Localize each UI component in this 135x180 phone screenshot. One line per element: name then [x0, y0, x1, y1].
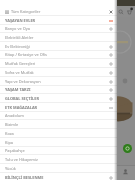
button[interactable]: YAŞAYAN EVLER [0, 16, 117, 25]
button[interactable]: Banyo ve Oya [0, 24, 117, 33]
staticText: Ev Elektroniği [5, 44, 30, 49]
button[interactable]: Tüm Kategoriler [0, 7, 117, 16]
staticText: Yapı ve Dekorasyon [5, 79, 41, 84]
button[interactable]: Sofra ve Mutfak [0, 68, 117, 77]
button[interactable]: Search [116, 7, 125, 16]
staticText: ETK MAĞAZALAR [5, 105, 38, 110]
staticText: Koza [5, 131, 14, 136]
button[interactable]: ETK MAĞAZALAR [0, 103, 117, 112]
button[interactable]: BİLİNÇLİ BESLENME [0, 173, 117, 180]
button[interactable]: Yapı ve Dekorasyon [0, 77, 117, 86]
staticText: Bizimle [5, 122, 19, 127]
staticText: YAŞAYAN EVLER [5, 18, 36, 23]
button[interactable]: YAŞAM TARZI [0, 85, 117, 94]
staticText: BİLİNÇLİ BESLENME [5, 175, 44, 180]
staticText: Banyo ve Oya [5, 26, 30, 31]
staticText: Tulu ve Hikayemiz [5, 157, 38, 162]
staticText: GLOBAL SEÇTİLER [5, 96, 39, 101]
button[interactable]: Yücük [0, 164, 117, 173]
button[interactable]: Kitap / Kırtasiye ve Ofis [0, 50, 117, 59]
button[interactable]: Mutfak Gereçleri [0, 59, 117, 68]
button[interactable]: Ev Elektroniği [0, 42, 117, 51]
staticText: Tüm Kategoriler [11, 9, 41, 14]
button[interactable]: GLOBAL SEÇTİLER [0, 94, 117, 103]
button[interactable]: WhatsApp [123, 144, 132, 153]
button[interactable]: Kipa [0, 138, 117, 147]
button[interactable]: Anadolum [0, 111, 117, 120]
button[interactable]: Koza [0, 129, 117, 138]
staticText: Kitap / Kırtasiye ve Ofis [5, 52, 47, 57]
button[interactable]: Paşabahçe [0, 146, 117, 155]
button[interactable]: Cart [125, 7, 134, 16]
staticText: Kipa [5, 140, 13, 145]
staticText: Paşabahçe [5, 148, 25, 153]
button[interactable]: Tulu ve Hikayemiz [0, 155, 117, 164]
staticText: Anadolum [5, 113, 24, 118]
staticText: Sofra ve Mutfak [5, 70, 34, 75]
staticText: Elektrikli Aletler [5, 35, 34, 40]
button[interactable]: Elektrikli Aletler [0, 33, 117, 42]
button[interactable]: Account [119, 166, 132, 179]
button[interactable]: Bizimle [0, 120, 117, 129]
staticText: Yücük [5, 166, 16, 171]
staticText: Mutfak Gereçleri [5, 61, 36, 66]
staticText: YAŞAM TARZI [5, 87, 31, 92]
